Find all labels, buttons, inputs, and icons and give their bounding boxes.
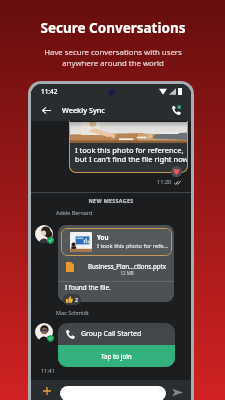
staticText: Tap to join xyxy=(101,352,132,360)
staticText: 2 xyxy=(75,296,78,303)
staticText: Group Call Started xyxy=(81,329,142,339)
button[interactable] xyxy=(60,386,166,400)
staticText: 12 MB xyxy=(83,270,171,276)
button[interactable]: Back xyxy=(39,103,53,117)
staticText: 11:42 xyxy=(41,87,58,96)
staticText: 11:41 xyxy=(41,367,55,374)
button[interactable]: Call xyxy=(168,102,184,118)
staticText: I took this photo for reference, but I c… xyxy=(75,145,188,164)
staticText: Have secure conversations with users any… xyxy=(44,47,182,69)
button[interactable]: Send xyxy=(170,385,184,399)
staticText: 11:20 xyxy=(157,178,172,186)
button[interactable]: Tap to join xyxy=(58,345,175,367)
staticText: NEW MESSAGES xyxy=(31,197,191,204)
button[interactable]: Add attachment xyxy=(40,384,54,398)
staticText: Business_Plan...ctions.pptx xyxy=(83,262,171,270)
staticText: Max Schmidt xyxy=(56,309,89,316)
staticText: Weekly Sync xyxy=(62,105,105,115)
staticText: Secure Conversations xyxy=(40,19,186,37)
staticText: You xyxy=(97,233,109,241)
staticText: I took this photo for refe... xyxy=(97,242,169,250)
staticText: I found the file. xyxy=(65,283,111,292)
staticText: Adele Bernard xyxy=(56,209,93,216)
